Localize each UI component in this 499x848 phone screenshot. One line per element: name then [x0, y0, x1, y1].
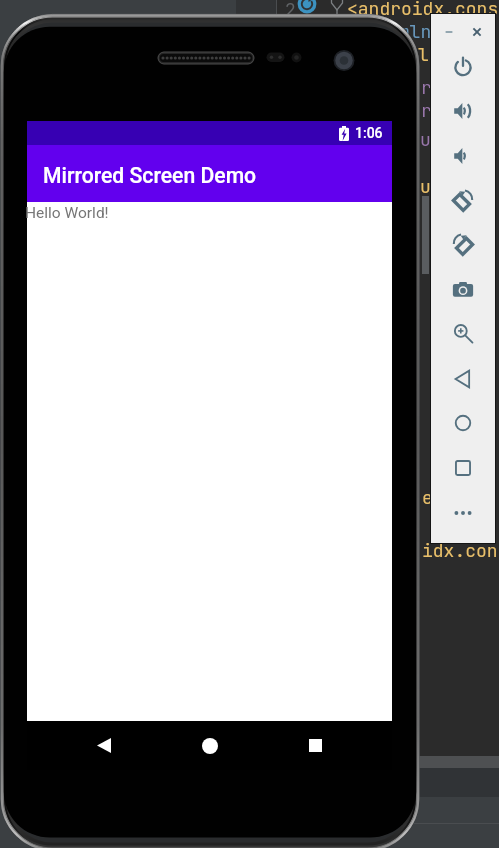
button[interactable]: More	[443, 493, 483, 533]
button[interactable]: Close	[457, 12, 497, 52]
button[interactable]: Back	[76, 721, 132, 770]
button[interactable]: Power	[443, 47, 483, 87]
staticText: u	[420, 175, 431, 199]
button[interactable]: Home	[443, 403, 483, 443]
staticText: ln	[418, 43, 440, 67]
staticText: xmln	[388, 20, 432, 44]
button[interactable]: Rotate left	[443, 181, 483, 221]
button[interactable]: Take screenshot	[443, 270, 483, 310]
button[interactable]: Volume up	[443, 91, 483, 131]
button[interactable]: Minimize	[429, 12, 469, 52]
staticText: <androidx.cons	[347, 0, 499, 21]
staticText: Hello World!	[25, 204, 109, 222]
staticText: 2	[285, 0, 296, 22]
staticText: e	[422, 486, 433, 510]
staticText: r	[421, 76, 432, 100]
staticText: r	[421, 99, 432, 123]
button[interactable]: Home	[182, 721, 238, 770]
staticText: u	[420, 128, 431, 152]
staticText: Mirrored Screen Demo	[43, 163, 257, 188]
button[interactable]: Rotate right	[443, 225, 483, 265]
button[interactable]: Recents	[287, 721, 343, 770]
button[interactable]: Zoom	[443, 314, 483, 354]
staticText: 1:06	[355, 125, 383, 141]
button[interactable]: Overview	[443, 448, 483, 488]
button[interactable]: Back	[443, 359, 483, 399]
staticText: idx.con	[422, 539, 498, 563]
button[interactable]: Volume down	[443, 136, 483, 176]
